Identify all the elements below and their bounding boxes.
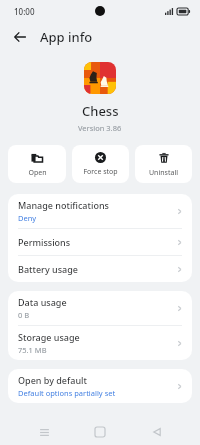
button[interactable]: Uninstall [135,145,192,183]
button[interactable]: Manage notifications [8,194,192,228]
staticText: Version 3.86 [78,123,122,133]
button[interactable]: Recents [31,419,57,445]
button[interactable]: Home [87,419,113,445]
staticText: Default options partially set [18,388,116,398]
staticText: Chess [82,102,119,120]
button[interactable]: Open [8,145,66,183]
staticText: Open [28,168,47,178]
button[interactable]: Back [6,23,34,51]
staticText: Uninstall [149,168,178,178]
button[interactable]: Data usage [8,291,192,325]
staticText: Data usage [18,296,67,308]
button[interactable]: Force stop [72,145,129,183]
staticText: Open by default [18,374,87,386]
staticText: Storage usage [18,331,80,343]
staticText: 0 B [18,310,30,320]
staticText: App info [40,28,93,46]
staticText: Manage notifications [18,199,109,211]
staticText: 10:00 [14,6,35,17]
staticText: Permissions [18,236,71,248]
button[interactable]: Battery usage [8,256,192,282]
staticText: 75.1 MB [18,345,47,355]
button[interactable]: Back [144,419,170,445]
staticText: Deny [18,213,37,223]
button[interactable]: Permissions [8,229,192,255]
button[interactable]: Open by default [8,369,192,403]
staticText: Battery usage [18,263,78,275]
staticText: Force stop [83,167,118,177]
button[interactable]: Storage usage [8,326,192,360]
